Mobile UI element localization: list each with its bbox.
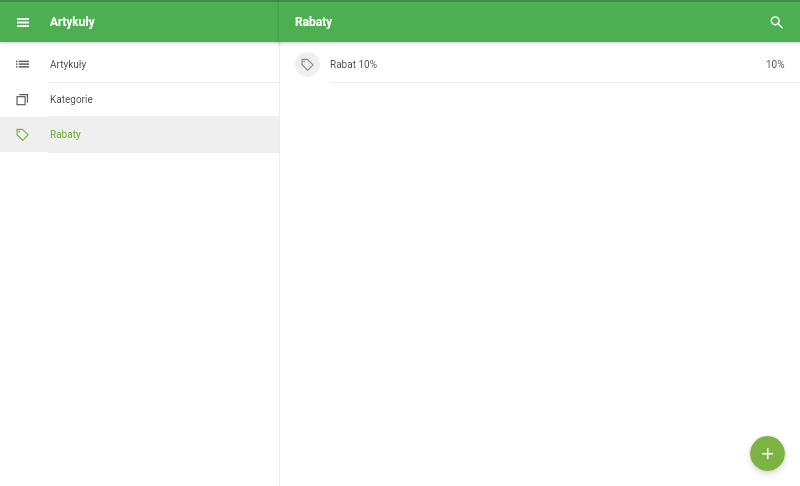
staticText: Artykuły xyxy=(50,59,87,71)
button[interactable]: Search xyxy=(755,2,797,42)
button[interactable]: Rabat 10% xyxy=(280,47,800,82)
staticText: Rabat 10% xyxy=(330,59,377,71)
button[interactable]: Kategorie xyxy=(0,83,279,116)
button[interactable]: Add xyxy=(750,436,785,471)
button[interactable]: Rabaty xyxy=(0,117,279,152)
staticText: Artykuły xyxy=(50,15,95,29)
staticText: Rabaty xyxy=(50,129,81,141)
button[interactable]: Artykuły xyxy=(0,47,279,82)
staticText: 10% xyxy=(766,59,785,71)
button[interactable]: Open navigation drawer xyxy=(0,2,45,42)
staticText: Kategorie xyxy=(50,94,93,106)
staticText: Rabaty xyxy=(295,15,333,29)
